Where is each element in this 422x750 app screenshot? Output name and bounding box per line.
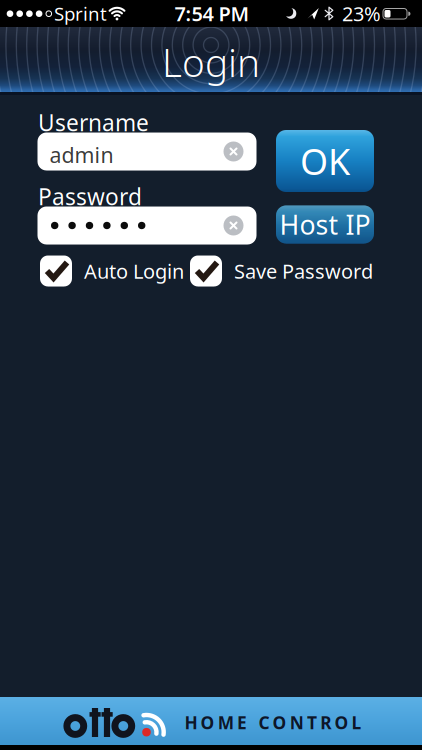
staticText [250,711,255,734]
staticText: Login [162,36,260,88]
staticText: O [201,711,215,734]
staticText: Auto Login [84,258,184,284]
staticText: Username [38,107,149,138]
staticText: 23% [342,0,381,27]
staticText: T [307,711,317,734]
button[interactable]: Clear text [223,141,243,161]
staticText: Sprint [54,1,107,26]
staticText: Save Password [234,258,373,284]
button[interactable]: Clear text [223,215,243,235]
button[interactable]: Save Password [190,255,373,286]
staticText: C [258,711,269,734]
button[interactable]: OK [276,130,374,192]
staticText: L [352,711,362,734]
staticText: M [218,711,234,734]
staticText: N [290,711,304,734]
staticText: O [334,711,348,734]
staticText: OK [300,137,350,185]
staticText: R [320,711,331,734]
staticText: O [273,711,287,734]
staticText: E [237,711,247,734]
staticText: Password [38,181,142,212]
staticText: H [184,711,197,734]
button[interactable]: Host IP [276,205,374,243]
staticText: Host IP [279,207,370,242]
button[interactable]: Auto Login [40,255,184,286]
staticText: admin [49,140,113,169]
staticText: 7:54 PM [174,0,249,27]
